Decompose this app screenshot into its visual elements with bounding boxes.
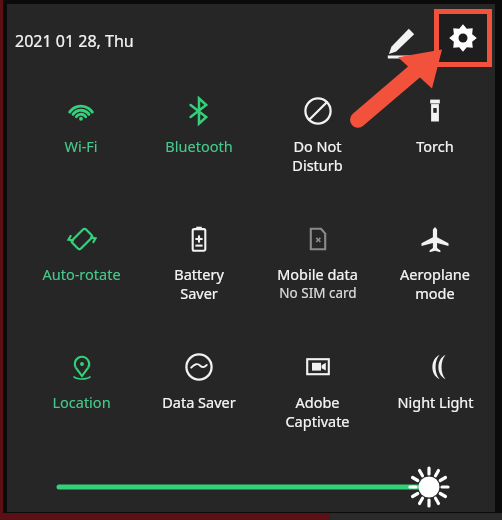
button[interactable]: Battery Saver (140, 220, 258, 330)
staticText: Do Not Disturb (292, 136, 343, 175)
staticText: Night Light (397, 392, 474, 412)
button[interactable]: Aeroplane mode (376, 220, 494, 330)
staticText: Location (52, 392, 111, 412)
button[interactable]: Settings (439, 14, 487, 62)
staticText: Wi-Fi (64, 136, 98, 156)
button[interactable]: Wi-Fi (22, 92, 140, 202)
staticText: 2021 01 28, Thu (15, 30, 134, 52)
button[interactable]: Auto-rotate (22, 220, 140, 330)
staticText: Aeroplane mode (400, 264, 470, 303)
staticText: Data Saver (162, 392, 236, 412)
button[interactable]: Location (22, 348, 140, 458)
button[interactable]: Data Saver (140, 348, 258, 458)
button[interactable]: Do Not Disturb (258, 92, 376, 202)
staticText: Battery Saver (174, 264, 224, 303)
button[interactable]: Torch (376, 92, 494, 202)
button[interactable]: Brightness (47, 464, 467, 510)
staticText: Adobe Captivate (285, 392, 350, 431)
button[interactable]: Night Light (376, 348, 494, 458)
staticText: No SIM card (279, 284, 357, 302)
staticText: Bluetooth (165, 136, 233, 156)
staticText: Torch (416, 136, 454, 156)
button[interactable]: Mobile data (258, 220, 376, 330)
button[interactable]: Bluetooth (140, 92, 258, 202)
staticText: Auto-rotate (42, 264, 121, 284)
button[interactable]: Edit (375, 16, 427, 68)
button[interactable]: Adobe Captivate (258, 348, 376, 458)
staticText: Mobile data (277, 264, 358, 284)
